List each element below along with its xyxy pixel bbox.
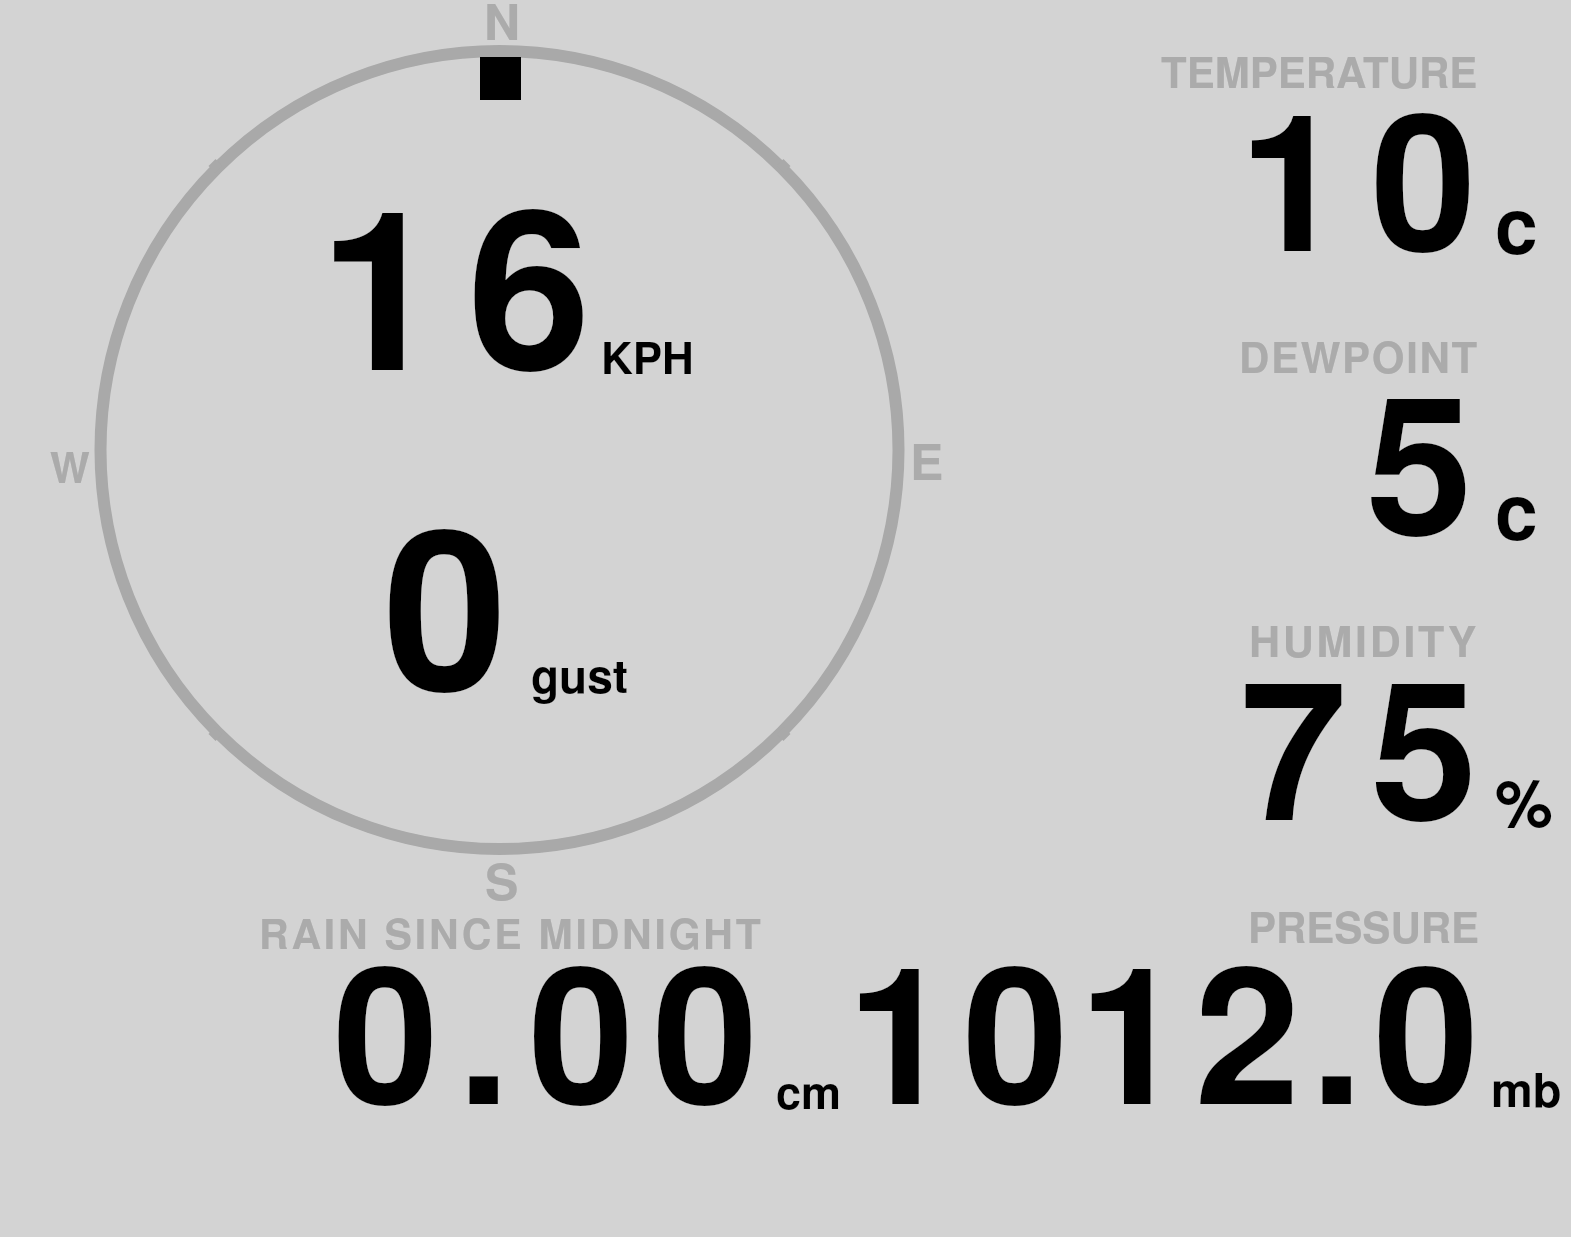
staticText: 0.00 [333,890,777,1162]
staticText: RAIN SINCE MIDNIGHT [259,903,764,962]
staticText: HUMIDITY [1249,609,1480,671]
staticText: % [1495,754,1553,847]
button[interactable]: Temperature 10 c [1120,40,1571,270]
staticText: TEMPERATURE [1161,41,1478,101]
staticText: KPH [601,324,694,387]
staticText: gust [531,641,629,707]
staticText: N [484,0,521,56]
staticText: PRESSURE [1248,896,1480,956]
button[interactable]: Dewpoint 5 c [1120,330,1571,560]
staticText: 10 [1239,37,1503,309]
button[interactable]: Rain since midnight 0.00 cm [250,900,910,1080]
staticText: 5 [1366,319,1473,594]
staticText: 0 [383,439,508,760]
staticText: 16 [319,120,616,438]
button[interactable]: Pressure 1012.0 mb [1120,896,1571,1126]
staticText: S [485,844,519,916]
staticText: E [910,424,944,496]
staticText: c [1495,453,1538,563]
button[interactable]: Wind speed and direction [90,40,910,860]
staticText: 75 [1240,604,1502,879]
staticText: DEWPOINT [1239,326,1479,386]
staticText: W [50,436,90,496]
button[interactable]: Humidity 75 percent [1120,612,1571,842]
staticText: mb [1491,1054,1562,1121]
staticText: cm [776,1058,842,1122]
staticText: c [1495,167,1538,277]
staticText: 1012.0 [847,890,1490,1162]
